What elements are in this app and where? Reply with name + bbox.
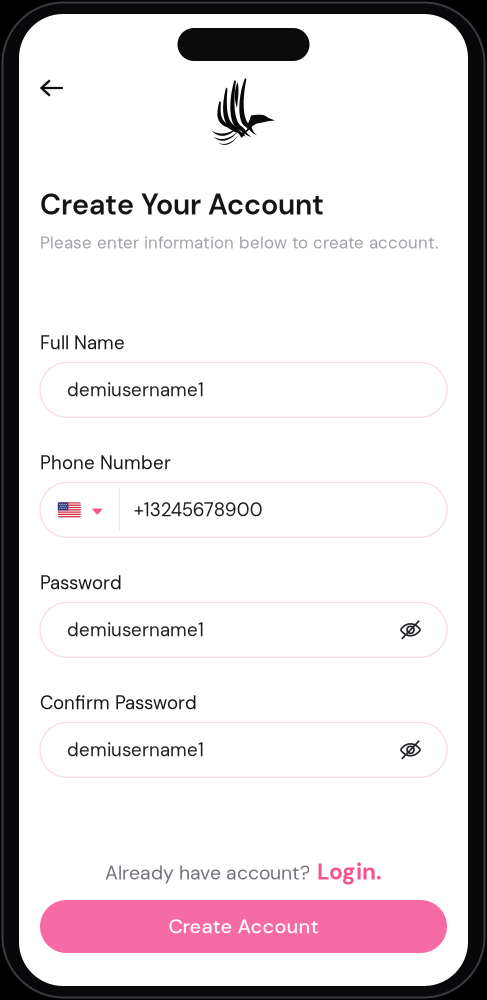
button[interactable]: Back — [19, 14, 76, 109]
staticText: demiusername1 — [67, 738, 204, 762]
staticText: Confirm Password — [40, 691, 197, 715]
staticText: demiusername1 — [67, 378, 204, 402]
button[interactable]: Create Account — [40, 900, 447, 953]
staticText: Password — [40, 571, 122, 595]
staticText: +13245678900 — [134, 498, 263, 522]
button[interactable]: demiusername1 — [40, 722, 447, 777]
staticText: Full Name — [40, 331, 125, 355]
staticText: Phone Number — [40, 451, 171, 475]
staticText: Login. — [317, 857, 382, 886]
staticText: Create Your Account — [40, 186, 324, 223]
staticText: demiusername1 — [67, 618, 204, 642]
button[interactable]: Select country code — [40, 482, 119, 537]
button[interactable]: demiusername1 — [40, 602, 447, 657]
button[interactable]: +13245678900 — [120, 482, 447, 537]
button[interactable]: demiusername1 — [40, 362, 447, 417]
staticText: Create Account — [168, 913, 318, 939]
staticText: Already have account? — [105, 860, 310, 885]
staticText: Please enter information below to create… — [40, 232, 438, 254]
button[interactable]: Already have account? — [97, 853, 390, 890]
